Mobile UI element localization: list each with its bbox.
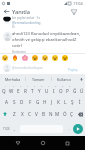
button[interactable]: K bbox=[55, 96, 62, 108]
staticText: ahndi123 Bunudud onydıkazedean, bbox=[12, 31, 81, 37]
button[interactable]: Send bbox=[72, 123, 84, 135]
button[interactable]: S bbox=[10, 96, 18, 108]
staticText: K bbox=[57, 99, 60, 105]
button[interactable]: 0 bbox=[64, 84, 71, 96]
staticText: 7 bbox=[48, 85, 50, 88]
staticText: O bbox=[59, 88, 63, 94]
staticText: P bbox=[66, 88, 69, 94]
button[interactable]: Home bbox=[37, 137, 49, 149]
staticText: T bbox=[31, 88, 34, 94]
staticText: W bbox=[9, 88, 14, 94]
button[interactable]: 2 bbox=[8, 84, 15, 96]
staticText: M bbox=[55, 111, 60, 117]
button[interactable]: Backspace bbox=[75, 108, 85, 120]
button[interactable]: V bbox=[33, 108, 40, 120]
staticText: H bbox=[43, 99, 47, 105]
button[interactable]: Merhaba bbox=[0, 74, 25, 84]
button[interactable]: Recents bbox=[61, 137, 73, 149]
button[interactable]: 8 bbox=[50, 84, 57, 96]
button[interactable]: F bbox=[26, 96, 34, 108]
staticText: 1 bbox=[5, 85, 7, 88]
button[interactable]: J bbox=[48, 96, 55, 108]
staticText: @emmalondonlingua bbox=[12, 66, 43, 70]
button[interactable]: Emoji 3 bbox=[20, 53, 30, 63]
staticText: N bbox=[49, 111, 53, 117]
staticText: C bbox=[28, 111, 31, 117]
button[interactable]: Voice input bbox=[77, 75, 85, 83]
button[interactable]: İ bbox=[76, 96, 83, 108]
staticText: To bbox=[12, 25, 16, 29]
button[interactable]: M bbox=[54, 108, 61, 120]
staticText: L bbox=[64, 99, 67, 105]
staticText: ofınith ve gekipşi ebarikonulhodZ bbox=[12, 37, 77, 43]
staticText: I bbox=[53, 88, 55, 94]
staticText: 4 bbox=[27, 85, 29, 88]
button[interactable]: Emoji 6 bbox=[50, 53, 60, 63]
staticText: Yanıtla bbox=[12, 8, 31, 16]
button[interactable]: G bbox=[34, 96, 41, 108]
button[interactable]: Z bbox=[10, 108, 18, 120]
staticText: 6 bbox=[41, 85, 43, 88]
button[interactable]: D bbox=[18, 96, 26, 108]
button[interactable]: A bbox=[2, 96, 10, 108]
button[interactable]: Back bbox=[12, 137, 24, 149]
button[interactable]: B bbox=[40, 108, 47, 120]
staticText: Kullanıcı bbox=[57, 77, 72, 82]
staticText: E bbox=[17, 88, 20, 94]
button[interactable]: Ö bbox=[61, 108, 68, 120]
staticText: Tamam bbox=[32, 77, 45, 82]
staticText: İ bbox=[79, 99, 81, 105]
staticText: . bbox=[68, 126, 70, 132]
staticText: Ö bbox=[63, 111, 67, 117]
staticText: D bbox=[20, 99, 24, 105]
button[interactable]: 7 bbox=[43, 84, 50, 96]
button[interactable]: 6 bbox=[36, 84, 43, 96]
staticText: 9 bbox=[62, 85, 64, 88]
staticText: Ü bbox=[80, 88, 84, 94]
button[interactable]: Comma bbox=[11, 123, 18, 135]
staticText: , bbox=[14, 126, 16, 132]
staticText: U bbox=[45, 88, 49, 94]
staticText: Z bbox=[13, 111, 16, 117]
staticText: S bbox=[13, 99, 16, 105]
button[interactable]: L bbox=[62, 96, 69, 108]
staticText: J bbox=[51, 99, 53, 105]
button[interactable]: Tamam bbox=[26, 74, 51, 84]
button[interactable]: Back bbox=[1, 6, 12, 17]
staticText: V bbox=[35, 111, 38, 117]
button[interactable]: 1 bbox=[0, 84, 8, 96]
button[interactable]: 9 bbox=[57, 84, 64, 96]
button[interactable]: Emoji 2 bbox=[10, 53, 20, 63]
button[interactable]: Emoji 7 bbox=[60, 53, 70, 63]
button[interactable]: H bbox=[41, 96, 48, 108]
button[interactable]: Kullanıcı bbox=[52, 74, 77, 84]
button[interactable]: Shift bbox=[0, 108, 10, 120]
button[interactable]: X bbox=[18, 108, 26, 120]
button[interactable]: Ğ bbox=[71, 84, 78, 96]
button[interactable]: 5 bbox=[29, 84, 36, 96]
button[interactable]: 3 bbox=[15, 84, 22, 96]
button[interactable]: Emoji 1 bbox=[0, 53, 10, 63]
staticText: Y bbox=[38, 88, 41, 94]
staticText: X bbox=[21, 111, 24, 117]
staticText: ?123 bbox=[3, 127, 10, 131]
staticText: A bbox=[5, 99, 8, 105]
button[interactable]: Emoji 4 bbox=[30, 53, 40, 63]
staticText: Ğ bbox=[73, 88, 77, 94]
button[interactable]: C bbox=[26, 108, 33, 120]
staticText: G bbox=[36, 99, 40, 105]
button[interactable]: Ç bbox=[68, 108, 75, 120]
button[interactable]: Send reply bbox=[68, 6, 80, 18]
button[interactable]: Ü bbox=[78, 84, 85, 96]
button[interactable]: Emoji 5 bbox=[40, 53, 50, 63]
staticText: Ç bbox=[70, 111, 73, 117]
staticText: cotirl bbox=[12, 43, 22, 49]
button[interactable]: N bbox=[47, 108, 54, 120]
button[interactable]: 4 bbox=[22, 84, 29, 96]
button[interactable]: Ş bbox=[69, 96, 76, 108]
staticText: 0 bbox=[69, 85, 71, 88]
button[interactable]: ?123 bbox=[1, 123, 11, 135]
staticText: 3 bbox=[20, 85, 22, 88]
